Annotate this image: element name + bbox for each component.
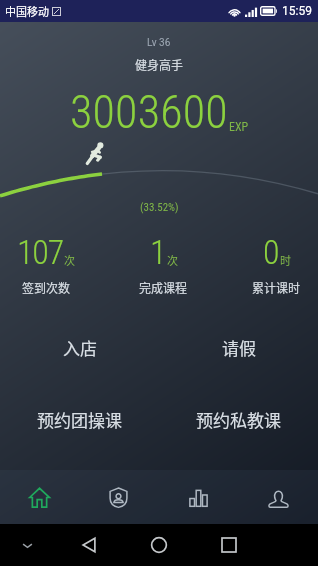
staticText: 0 <box>263 232 279 272</box>
button[interactable]: Home <box>124 524 194 566</box>
staticText: 预约团操课 <box>37 407 122 432</box>
button[interactable]: Statistics <box>158 470 238 524</box>
button[interactable]: 预约私教课 <box>159 383 318 455</box>
other: Hide keyboard <box>21 539 34 552</box>
button[interactable]: 预约团操课 <box>0 383 159 455</box>
button[interactable]: Recent apps <box>194 524 264 566</box>
button[interactable]: Profile <box>238 470 318 524</box>
staticText: 时 <box>280 252 291 268</box>
button[interactable]: 0 <box>252 232 301 296</box>
staticText: 次 <box>167 252 178 268</box>
staticText: 1 <box>150 232 166 272</box>
staticText: 累计课时 <box>252 279 301 296</box>
staticText: 完成课程 <box>139 279 188 296</box>
staticText: 入店 <box>63 335 97 360</box>
staticText: 签到次数 <box>22 279 71 296</box>
staticText: 15:59 <box>282 4 312 18</box>
button[interactable]: 1 <box>139 232 188 296</box>
button[interactable]: 请假 <box>159 311 318 383</box>
staticText: Lv 36 <box>147 37 171 49</box>
staticText: EXP <box>229 120 249 134</box>
button[interactable]: 入店 <box>0 311 159 383</box>
staticText: 107 <box>17 232 63 272</box>
button[interactable]: 107 <box>17 232 75 296</box>
button[interactable]: Membership <box>79 470 158 524</box>
staticText: 次 <box>64 252 75 268</box>
staticText: 请假 <box>222 335 256 360</box>
button[interactable]: Home <box>0 470 79 524</box>
staticText: (33.52%) <box>140 201 179 214</box>
staticText: 健身高手 <box>135 56 184 73</box>
button[interactable]: Back <box>54 524 124 566</box>
staticText: 中国移动 <box>5 3 49 19</box>
staticText: 预约私教课 <box>196 407 281 432</box>
staticText: 3003600 <box>70 85 228 139</box>
